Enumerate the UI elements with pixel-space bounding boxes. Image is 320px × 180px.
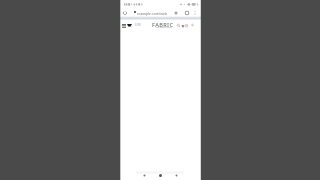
staticText: example.com/web [137, 11, 168, 16]
button[interactable]: Account [189, 22, 196, 29]
button[interactable]: Back [140, 171, 148, 179]
button[interactable]: Wishlist [179, 22, 186, 29]
button[interactable]: Reload page [121, 9, 128, 16]
staticText: EUR [135, 23, 141, 27]
button[interactable]: Select country [126, 22, 133, 29]
button[interactable]: Home [156, 171, 164, 179]
staticText: FABRIC [152, 21, 174, 29]
button[interactable]: New tab [172, 9, 179, 16]
button[interactable]: Shopping bag [183, 22, 190, 29]
button[interactable]: Search [175, 22, 182, 29]
button[interactable]: Switch tabs [183, 9, 190, 16]
button[interactable]: More options [191, 9, 198, 16]
button[interactable]: Recent apps [172, 171, 180, 179]
staticText: THE FABRIC STORE [156, 26, 172, 28]
button[interactable]: Open menu [120, 22, 127, 29]
